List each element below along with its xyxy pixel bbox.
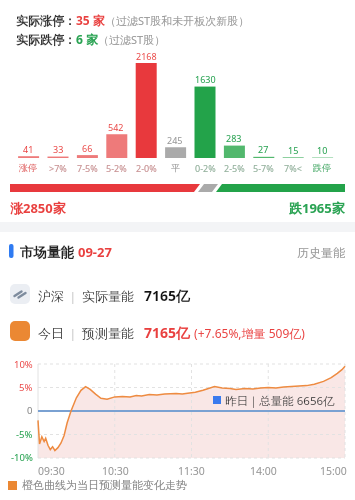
staticText: -10% — [11, 451, 33, 464]
staticText: 实际跌停： — [16, 32, 76, 47]
staticText: 10 — [317, 144, 328, 156]
staticText: 7%< — [284, 162, 302, 174]
staticText: 沪深 — [38, 288, 64, 304]
staticText: 5-2% — [106, 162, 127, 174]
staticText: 09:30 — [38, 464, 65, 478]
staticText: 2-0% — [136, 162, 157, 174]
staticText: 15:00 — [320, 464, 347, 478]
staticText: 2168 — [136, 50, 157, 62]
staticText: 7165亿 — [144, 286, 191, 305]
staticText: ｜ — [64, 288, 82, 304]
staticText: >7% — [49, 162, 67, 174]
staticText: -5% — [16, 428, 33, 441]
staticText: 7-5% — [77, 162, 98, 174]
staticText: 今日 — [38, 325, 64, 341]
staticText: 0 — [27, 404, 33, 417]
staticText: 涨停 — [19, 162, 37, 173]
staticText: 09-27 — [78, 243, 112, 261]
staticText: 历史量能 — [297, 245, 345, 260]
button[interactable]: 沪深 — [38, 286, 191, 305]
staticText: 542 — [108, 121, 124, 133]
button[interactable]: 历史量能 — [297, 245, 345, 260]
staticText: 5% — [19, 381, 33, 394]
staticText: 1630 — [195, 73, 216, 85]
staticText: 实际量能 — [82, 288, 134, 304]
staticText: 0-2% — [195, 162, 216, 174]
staticText: （过滤ST股） — [98, 32, 166, 47]
staticText: 33 — [53, 143, 64, 155]
staticText: 66 — [82, 142, 93, 154]
staticText: 7165亿 — [144, 323, 191, 342]
staticText: 283 — [226, 132, 242, 144]
staticText: ｜ — [64, 325, 82, 341]
staticText: 14:00 — [250, 464, 277, 478]
staticText: 实际涨停： — [16, 13, 76, 28]
staticText: 昨日｜总量能 6656亿 — [225, 393, 335, 409]
staticText: 11:30 — [178, 464, 205, 478]
staticText: 2-5% — [224, 162, 245, 174]
staticText: (+7.65%,增量 509亿) — [191, 325, 305, 341]
staticText: 10:30 — [102, 464, 129, 478]
staticText: 35 家 — [76, 12, 105, 28]
staticText: 15 — [288, 144, 299, 156]
staticText: 预测量能 — [82, 325, 134, 341]
staticText: （过滤ST股和未开板次新股） — [105, 13, 250, 28]
staticText: 245 — [167, 134, 183, 146]
staticText: 橙色曲线为当日预测量能变化走势 — [22, 478, 187, 492]
staticText: 跌1965家 — [289, 199, 345, 217]
staticText: 市场量能 — [20, 243, 78, 261]
staticText: 6 家 — [76, 31, 98, 47]
button[interactable]: 今日 — [38, 323, 305, 342]
staticText: 5-7% — [253, 162, 274, 174]
staticText: 41 — [23, 143, 34, 155]
staticText: 10% — [14, 358, 33, 371]
staticText: 27 — [258, 143, 269, 155]
staticText: 跌停 — [313, 162, 331, 173]
staticText: 涨2850家 — [10, 199, 66, 217]
staticText: 平 — [171, 162, 180, 173]
